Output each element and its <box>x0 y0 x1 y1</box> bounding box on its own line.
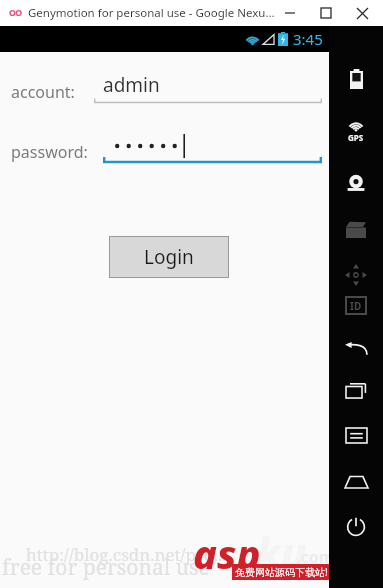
button[interactable]: Video <box>336 212 376 246</box>
staticText: .com <box>296 546 335 568</box>
button[interactable] <box>103 130 322 164</box>
staticText: ID <box>350 299 362 313</box>
button[interactable]: Home <box>336 464 376 498</box>
button[interactable]: Menu <box>336 418 376 452</box>
button[interactable]: Power <box>336 510 376 544</box>
staticText: 3:45 <box>293 29 323 49</box>
button[interactable]: Camera <box>336 166 376 200</box>
staticText: password: <box>11 141 88 163</box>
staticText: asp <box>193 526 261 580</box>
button[interactable]: Back <box>336 332 376 366</box>
staticText: GPS <box>348 132 364 143</box>
staticText: ku <box>256 524 307 581</box>
button[interactable]: Maximize <box>311 1 341 25</box>
staticText: 免费网站源码下载站! <box>235 565 328 579</box>
staticText: Genymotion for personal use - Google Nex… <box>28 5 275 21</box>
staticText: admin <box>103 72 160 98</box>
button[interactable]: Battery <box>336 62 376 96</box>
staticText: Login <box>144 244 194 270</box>
button[interactable]: GPS <box>336 116 376 150</box>
staticText: http://blog.csdn.net/pro... <box>26 543 227 566</box>
button[interactable]: Identifiers <box>336 288 376 322</box>
staticText: free for personal use <box>2 553 210 582</box>
staticText: account: <box>11 81 75 103</box>
button[interactable]: Minimize <box>275 1 305 25</box>
button[interactable]: Close <box>347 1 377 25</box>
button[interactable]: Recents <box>336 374 376 408</box>
button[interactable]: Login <box>109 236 229 278</box>
button[interactable]: Dpad <box>336 258 376 292</box>
button[interactable]: admin <box>94 70 322 104</box>
